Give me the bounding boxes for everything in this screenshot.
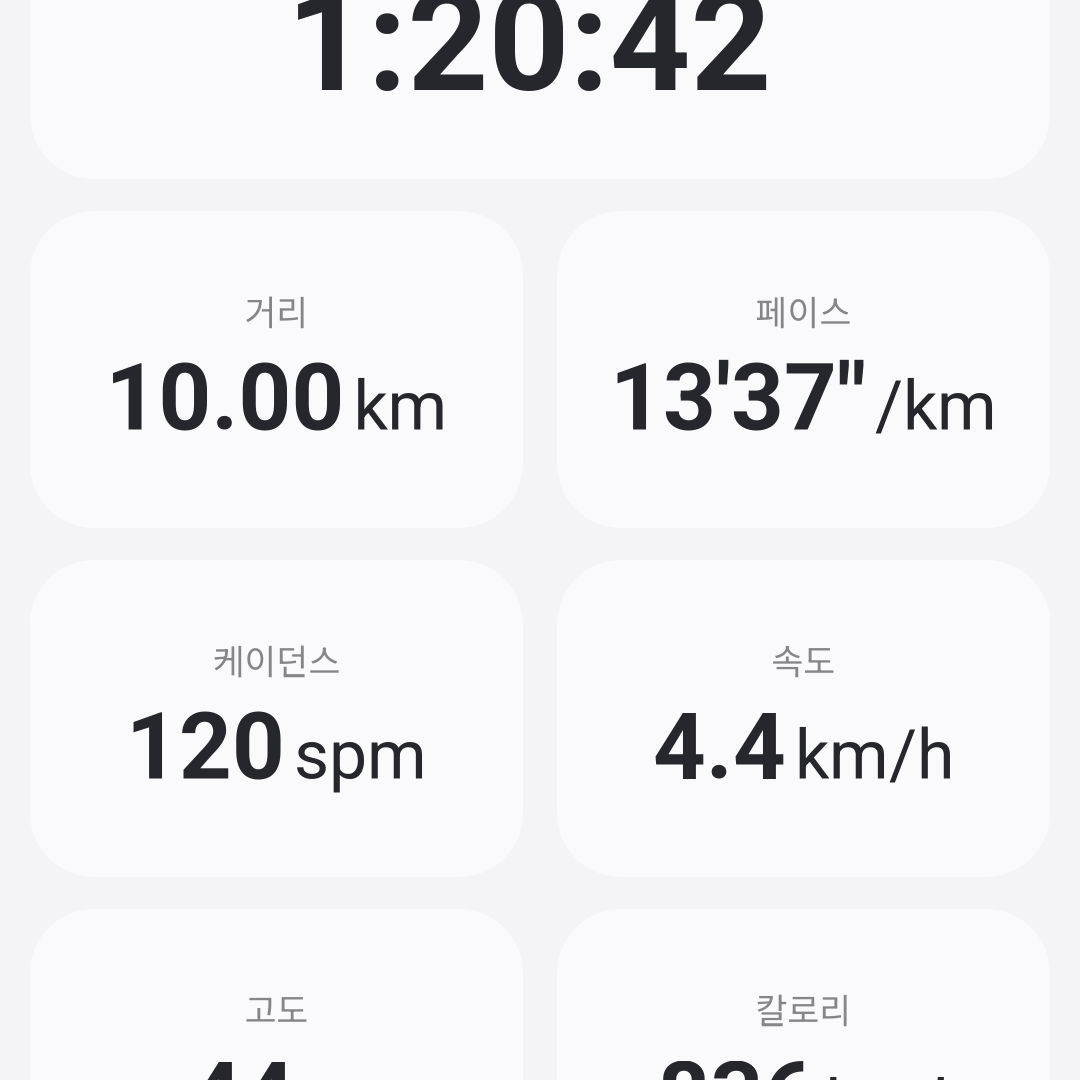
- staticText: /km: [875, 366, 997, 446]
- staticText: 836: [657, 1042, 816, 1080]
- staticText: 120: [126, 693, 285, 801]
- staticText: 44: [189, 1042, 295, 1080]
- staticText: 1:20:42: [286, 0, 771, 125]
- staticText: km/h: [795, 715, 954, 795]
- staticText: 케이던스: [212, 634, 340, 684]
- staticText: 고도: [244, 983, 308, 1033]
- staticText: 페이스: [755, 285, 851, 335]
- button[interactable]: 거리: [30, 211, 523, 528]
- staticText: spm: [294, 715, 427, 795]
- staticText: km: [353, 366, 447, 446]
- button[interactable]: 페이스: [557, 211, 1050, 528]
- staticText: 속도: [771, 634, 835, 684]
- button[interactable]: 케이던스: [30, 560, 523, 877]
- staticText: 4.4: [653, 693, 786, 801]
- staticText: 10.00: [105, 344, 344, 452]
- staticText: kcal: [825, 1064, 949, 1080]
- staticText: 칼로리: [755, 983, 851, 1033]
- staticText: 거리: [244, 285, 308, 335]
- button[interactable]: 칼로리: [557, 909, 1050, 1080]
- button[interactable]: 속도: [557, 560, 1050, 877]
- staticText: 13'37": [610, 344, 866, 452]
- button[interactable]: 고도: [30, 909, 523, 1080]
- button[interactable]: 1:20:42: [30, 0, 1050, 179]
